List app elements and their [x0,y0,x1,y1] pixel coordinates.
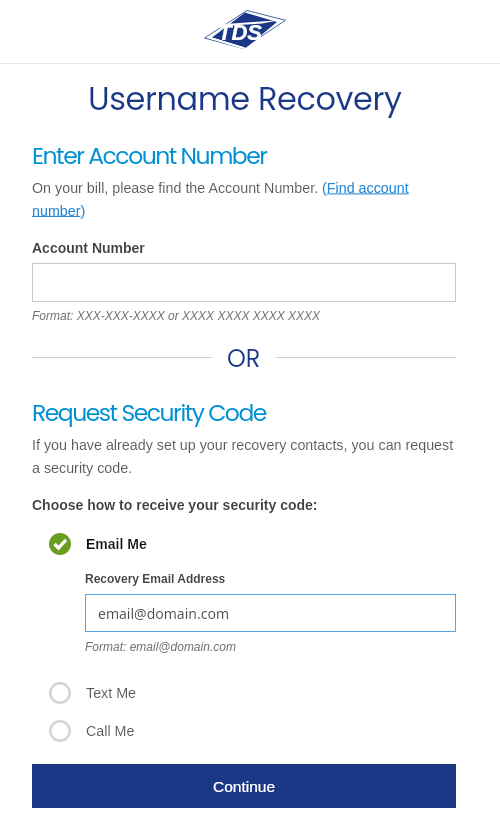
staticText: Request Security Code [32,396,266,429]
staticText: Choose how to receive your security code… [32,497,318,513]
button[interactable]: Call Me [33,718,173,744]
staticText: Continue [213,778,276,795]
staticText: Account Number [32,240,145,256]
staticText: Format: email@domain.com [85,640,236,653]
staticText: TDS [218,20,262,45]
staticText: On your bill, please find the Account Nu… [32,180,432,219]
button[interactable]: Continue [32,764,456,808]
staticText: Text Me [86,685,137,701]
staticText: OR [227,342,261,376]
button[interactable] [32,263,456,302]
staticText: Recovery Email Address [85,572,226,585]
staticText: Username Recovery [88,76,402,121]
other: TDS logo [200,8,292,52]
button[interactable]: Text Me [33,680,173,706]
button[interactable]: Email Me [33,531,179,557]
button[interactable]: email@domain.com [85,594,456,632]
staticText: If you have already set up your recovery… [32,437,462,476]
staticText: Call Me [86,723,135,739]
staticText: Email Me [86,536,147,552]
staticText: Format: XXX-XXX-XXXX or XXXX XXXX XXXX X… [32,309,321,322]
staticText: email@domain.com [98,604,229,623]
staticText: Enter Account Number [32,139,267,172]
